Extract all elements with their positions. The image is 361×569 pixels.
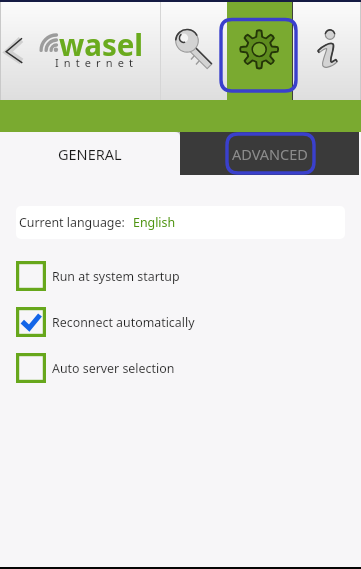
- button[interactable]: Settings: [227, 2, 292, 100]
- staticText: Internet: [55, 55, 139, 70]
- button[interactable]: Account: [161, 2, 227, 100]
- button[interactable]: ADVANCED: [180, 132, 359, 175]
- button[interactable]: GENERAL: [0, 132, 180, 175]
- staticText: Reconnect automatically: [52, 314, 195, 331]
- staticText: wasel: [59, 24, 144, 64]
- staticText: ADVANCED: [232, 144, 308, 164]
- button[interactable]: Info: [293, 2, 360, 100]
- button[interactable]: Current language:: [16, 206, 345, 239]
- staticText: English: [133, 214, 176, 231]
- staticText: Run at system startup: [52, 268, 180, 285]
- staticText: GENERAL: [58, 144, 122, 164]
- staticText: Auto server selection: [52, 360, 175, 377]
- button[interactable]: Run at system startup: [0, 253, 361, 299]
- button[interactable]: Auto server selection: [0, 345, 361, 391]
- button[interactable]: Reconnect automatically: [0, 299, 361, 345]
- staticText: Current language:: [19, 214, 125, 231]
- button[interactable]: Back: [0, 2, 34, 100]
